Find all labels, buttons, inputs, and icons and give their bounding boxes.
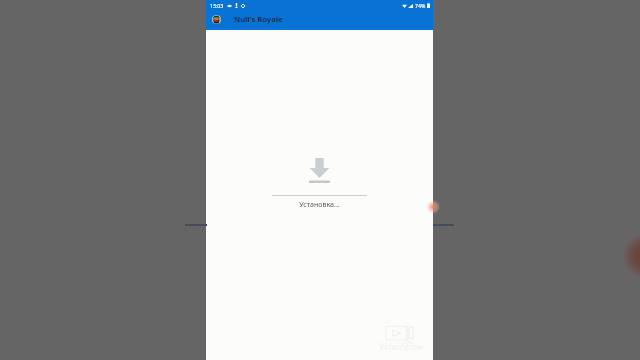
button[interactable]: Установка... bbox=[272, 158, 367, 209]
staticText: 74% bbox=[415, 2, 426, 9]
staticText: Установка... bbox=[299, 199, 340, 209]
staticText: VideoShow bbox=[379, 341, 424, 353]
button[interactable]: Null's Royale app icon bbox=[206, 8, 433, 30]
button[interactable]: Null's Royale app icon bbox=[212, 15, 221, 24]
staticText: 13:03 bbox=[210, 2, 224, 9]
staticText: Null's Royale bbox=[234, 14, 283, 24]
